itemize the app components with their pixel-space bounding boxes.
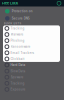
staticText: Secure DNS <box>12 17 30 20</box>
staticText: Tracking <box>11 81 25 85</box>
button[interactable]: Protection on <box>5 9 64 14</box>
staticText: Clickbait <box>11 57 25 61</box>
button[interactable]: Email Trackers <box>3 50 60 56</box>
staticText: Tracking <box>11 27 25 30</box>
button[interactable]: Settings <box>57 1 61 5</box>
staticText: Slow Data <box>11 69 26 73</box>
button[interactable]: Tracking <box>3 80 60 86</box>
button[interactable]: Secure DNS <box>5 16 64 21</box>
staticText: Malware <box>11 33 24 36</box>
staticText: Protection on <box>12 9 33 13</box>
button[interactable]: Phishing <box>3 38 60 44</box>
staticText: Email Trackers <box>11 51 35 54</box>
staticText: Spyware <box>11 75 24 79</box>
button[interactable]: Ransomware <box>3 44 60 50</box>
staticText: BLOCK LISTS <box>3 22 21 25</box>
button[interactable]: Hard Data <box>3 62 60 68</box>
staticText: Free Lock <box>2 1 18 5</box>
button[interactable]: Tracking <box>3 25 60 31</box>
staticText: Hard Data <box>11 63 26 67</box>
staticText: Phishing <box>11 39 25 42</box>
button[interactable]: Exposure <box>3 86 60 92</box>
staticText: Ransomware <box>11 45 31 48</box>
button[interactable]: Malware <box>3 31 60 38</box>
button[interactable]: Slow Data <box>3 68 60 74</box>
staticText: Exposure <box>11 88 26 91</box>
button[interactable]: Spyware <box>3 74 60 80</box>
button[interactable]: Clickbait <box>3 56 60 62</box>
